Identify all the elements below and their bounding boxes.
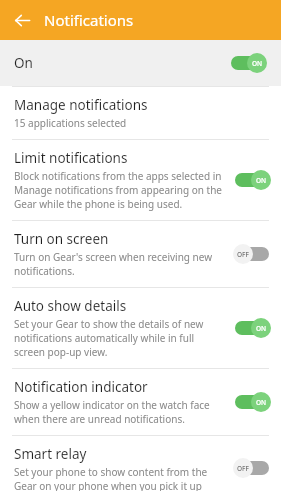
staticText: Turn on Gear's screen when receiving new… xyxy=(14,250,225,278)
staticText: Block notifications from the apps select… xyxy=(14,169,225,211)
button[interactable]: Notification indicator xyxy=(0,369,281,435)
button[interactable]: Manage notifications xyxy=(0,87,281,139)
staticText: Turn on screen xyxy=(14,230,109,248)
staticText: ON xyxy=(256,176,267,185)
button[interactable]: Switch off xyxy=(233,243,271,265)
staticText: ON xyxy=(252,59,263,68)
button[interactable]: Switch on xyxy=(233,317,271,339)
staticText: Limit notifications xyxy=(14,149,128,167)
button[interactable]: Turn on screen xyxy=(0,221,281,287)
staticText: Set your phone to show content from the … xyxy=(14,465,225,491)
button[interactable]: Switch on xyxy=(233,169,271,191)
staticText: Notifications xyxy=(44,10,134,30)
button[interactable]: Switch off xyxy=(233,457,271,479)
staticText: Notification indicator xyxy=(14,378,148,396)
staticText: OFF xyxy=(237,464,249,473)
staticText: ON xyxy=(256,324,267,333)
button[interactable]: Switch on xyxy=(229,52,267,74)
button[interactable]: Smart relay xyxy=(0,436,281,500)
staticText: On xyxy=(14,54,229,72)
staticText: Smart relay xyxy=(14,445,87,463)
button[interactable]: Switch on xyxy=(233,391,271,413)
button[interactable]: On xyxy=(0,40,281,86)
staticText: Auto show details xyxy=(14,297,127,315)
staticText: Manage notifications xyxy=(14,96,148,114)
button[interactable]: Auto show details xyxy=(0,288,281,368)
staticText: 15 applications selected xyxy=(14,116,127,130)
staticText: OFF xyxy=(237,250,249,259)
button[interactable]: Limit notifications xyxy=(0,140,281,220)
button[interactable]: Back xyxy=(6,4,38,36)
staticText: Show a yellow indicator on the watch fac… xyxy=(14,398,225,426)
staticText: ON xyxy=(256,398,267,407)
staticText: Set your Gear to show the details of new… xyxy=(14,317,225,359)
